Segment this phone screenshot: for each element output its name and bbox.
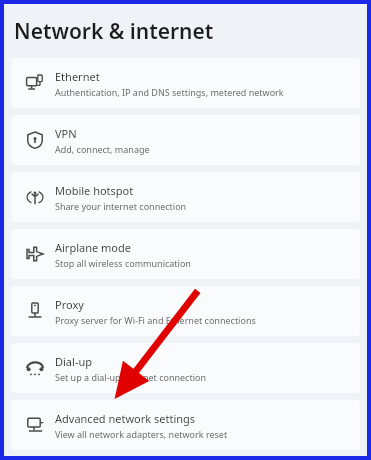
- staticText: Airplane mode: [55, 240, 131, 255]
- staticText: Stop all wireless communication: [55, 257, 191, 269]
- button[interactable]: Airplane mode: [11, 229, 360, 279]
- staticText: Ethernet: [55, 69, 100, 84]
- staticText: Authentication, IP and DNS settings, met…: [55, 86, 284, 98]
- button[interactable]: Mobile hotspot: [11, 172, 360, 222]
- staticText: Add, connect, manage: [55, 143, 150, 155]
- button[interactable]: Proxy: [11, 286, 360, 336]
- button[interactable]: Advanced network settings: [11, 400, 360, 450]
- staticText: Set up a dial-up internet connection: [55, 371, 207, 383]
- staticText: View all network adapters, network reset: [55, 428, 228, 440]
- button[interactable]: Dial-up: [11, 343, 360, 393]
- staticText: Proxy: [55, 297, 84, 312]
- staticText: Share your internet connection: [55, 200, 187, 212]
- staticText: Advanced network settings: [55, 411, 196, 426]
- staticText: Proxy server for Wi-Fi and Ethernet conn…: [55, 314, 256, 326]
- button[interactable]: Ethernet: [11, 58, 360, 108]
- staticText: Mobile hotspot: [55, 183, 134, 198]
- staticText: VPN: [55, 126, 77, 141]
- staticText: Dial-up: [55, 354, 92, 369]
- button[interactable]: VPN: [11, 115, 360, 165]
- staticText: Network & internet: [14, 17, 214, 46]
